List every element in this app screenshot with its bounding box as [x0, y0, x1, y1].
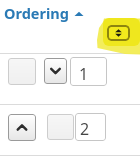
button[interactable] [8, 114, 36, 141]
button[interactable] [44, 58, 67, 84]
staticText: 1 [79, 63, 89, 85]
button[interactable] [107, 25, 130, 41]
staticText: Ordering [4, 3, 69, 23]
staticText: 2 [80, 118, 90, 140]
button[interactable]: 1 [70, 57, 107, 86]
button[interactable]: 2 [75, 113, 106, 141]
button[interactable]: Ordering [4, 3, 69, 23]
